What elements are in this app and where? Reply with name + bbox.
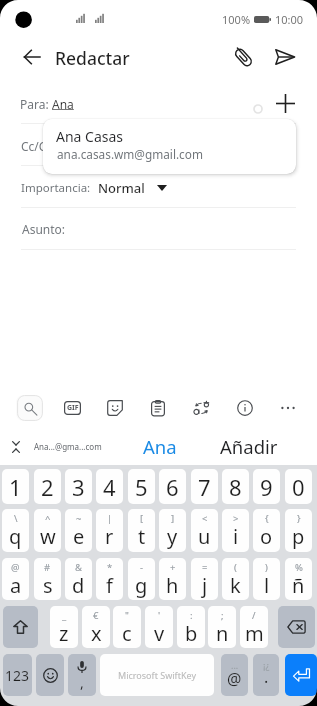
button[interactable]: Ana...@gma...com xyxy=(30,430,106,463)
button[interactable]: 4 xyxy=(96,469,123,504)
staticText: > xyxy=(233,512,239,525)
button[interactable]: Collapse suggestions xyxy=(3,434,28,459)
button[interactable]: 7 xyxy=(191,469,218,504)
staticText: j xyxy=(202,572,208,599)
staticText: Cc/Cco: xyxy=(21,138,63,154)
staticText: + xyxy=(170,561,176,574)
staticText: r xyxy=(105,523,114,550)
button[interactable]: a xyxy=(2,558,29,600)
button[interactable]: Ana xyxy=(122,430,198,463)
staticText: h xyxy=(166,572,179,599)
button[interactable]: z xyxy=(50,606,78,648)
button[interactable]: s xyxy=(34,558,61,600)
button[interactable]: Voice input xyxy=(68,654,96,696)
button[interactable]: m xyxy=(240,606,268,648)
button[interactable]: ñ xyxy=(285,558,312,600)
button[interactable]: j xyxy=(191,558,218,600)
button[interactable]: e xyxy=(65,509,92,552)
button[interactable]: 1 xyxy=(2,469,29,504)
button[interactable]: b xyxy=(177,606,205,648)
staticText: Ana Casas xyxy=(56,127,124,146)
button[interactable]: Period xyxy=(253,654,279,696)
staticText: ( xyxy=(234,561,237,574)
button[interactable]: 8 xyxy=(222,469,249,504)
staticText: ] xyxy=(171,512,175,525)
button[interactable]: 123 xyxy=(3,654,32,696)
staticText: 2 xyxy=(41,472,54,502)
button[interactable]: o xyxy=(253,509,280,552)
button[interactable]: Enter xyxy=(285,654,317,696)
button[interactable]: Info xyxy=(230,393,260,423)
button[interactable]: w xyxy=(34,509,61,552)
button[interactable]: GIF xyxy=(57,393,87,423)
staticText: Ana xyxy=(52,96,74,110)
button[interactable]: Space xyxy=(100,654,214,696)
button[interactable]: r xyxy=(96,509,123,552)
staticText: f xyxy=(106,572,113,599)
button[interactable]: d xyxy=(65,558,92,600)
button[interactable]: More xyxy=(273,393,303,423)
staticText: } xyxy=(297,512,301,525)
staticText: x xyxy=(91,620,102,647)
button[interactable]: h xyxy=(159,558,186,600)
button[interactable]: Añadir xyxy=(210,430,288,463)
button[interactable]: Back xyxy=(14,39,50,75)
button[interactable]: Shift xyxy=(3,606,38,648)
button[interactable]: Para: xyxy=(20,96,74,110)
button[interactable]: i xyxy=(222,509,249,552)
button[interactable]: x xyxy=(82,606,110,648)
button[interactable]: At sign xyxy=(221,654,248,696)
staticText: Redactar xyxy=(55,46,130,70)
staticText: e xyxy=(73,523,85,550)
button[interactable]: y xyxy=(159,509,186,552)
staticText: Añadir xyxy=(220,434,278,459)
staticText: m xyxy=(245,620,264,647)
button[interactable]: Ana Casas xyxy=(43,119,296,174)
button[interactable]: f xyxy=(96,558,123,600)
staticText: < xyxy=(202,512,208,525)
button[interactable]: g xyxy=(128,558,155,600)
button[interactable]: Translate xyxy=(186,393,216,423)
staticText: Normal xyxy=(98,179,145,196)
button[interactable]: t xyxy=(128,509,155,552)
staticText: 7 xyxy=(198,472,211,502)
staticText: o xyxy=(260,523,273,550)
button[interactable]: q xyxy=(2,509,29,552)
staticText: | xyxy=(107,512,113,525)
staticText: 3 xyxy=(72,472,85,502)
staticText: ' xyxy=(158,609,161,622)
staticText: ^ xyxy=(45,512,51,525)
button[interactable]: 3 xyxy=(65,469,92,504)
button[interactable]: Stickers xyxy=(100,393,130,423)
button[interactable]: v xyxy=(145,606,173,648)
staticText: # xyxy=(44,561,51,574)
staticText: ~ xyxy=(76,512,82,525)
staticText: = xyxy=(202,561,208,574)
staticText: & xyxy=(75,561,82,574)
button[interactable]: n xyxy=(208,606,236,648)
button[interactable]: c xyxy=(113,606,141,648)
button[interactable]: k xyxy=(222,558,249,600)
staticText: 1 xyxy=(9,472,22,502)
button[interactable]: Emoji xyxy=(36,654,64,696)
button[interactable]: p xyxy=(285,509,312,552)
button[interactable]: 5 xyxy=(128,469,155,504)
button[interactable]: Add recipient xyxy=(271,89,299,117)
button[interactable]: Clipboard xyxy=(143,393,173,423)
button[interactable]: l xyxy=(253,558,280,600)
staticText: ¡¿ xyxy=(263,659,270,671)
button[interactable]: Send xyxy=(267,39,303,75)
button[interactable]: 9 xyxy=(253,469,280,504)
button[interactable]: 0 xyxy=(285,469,312,504)
staticText: v xyxy=(154,620,165,647)
button[interactable]: Search xyxy=(14,393,44,423)
button[interactable]: 2 xyxy=(34,469,61,504)
button[interactable]: Normal xyxy=(98,179,167,196)
button[interactable]: Attach file xyxy=(225,39,261,75)
button[interactable]: Backspace xyxy=(278,606,315,648)
staticText: Asunto: xyxy=(22,221,66,237)
staticText: t xyxy=(138,523,146,550)
staticText: ñ xyxy=(292,572,305,599)
button[interactable]: 6 xyxy=(159,469,186,504)
button[interactable]: u xyxy=(191,509,218,552)
